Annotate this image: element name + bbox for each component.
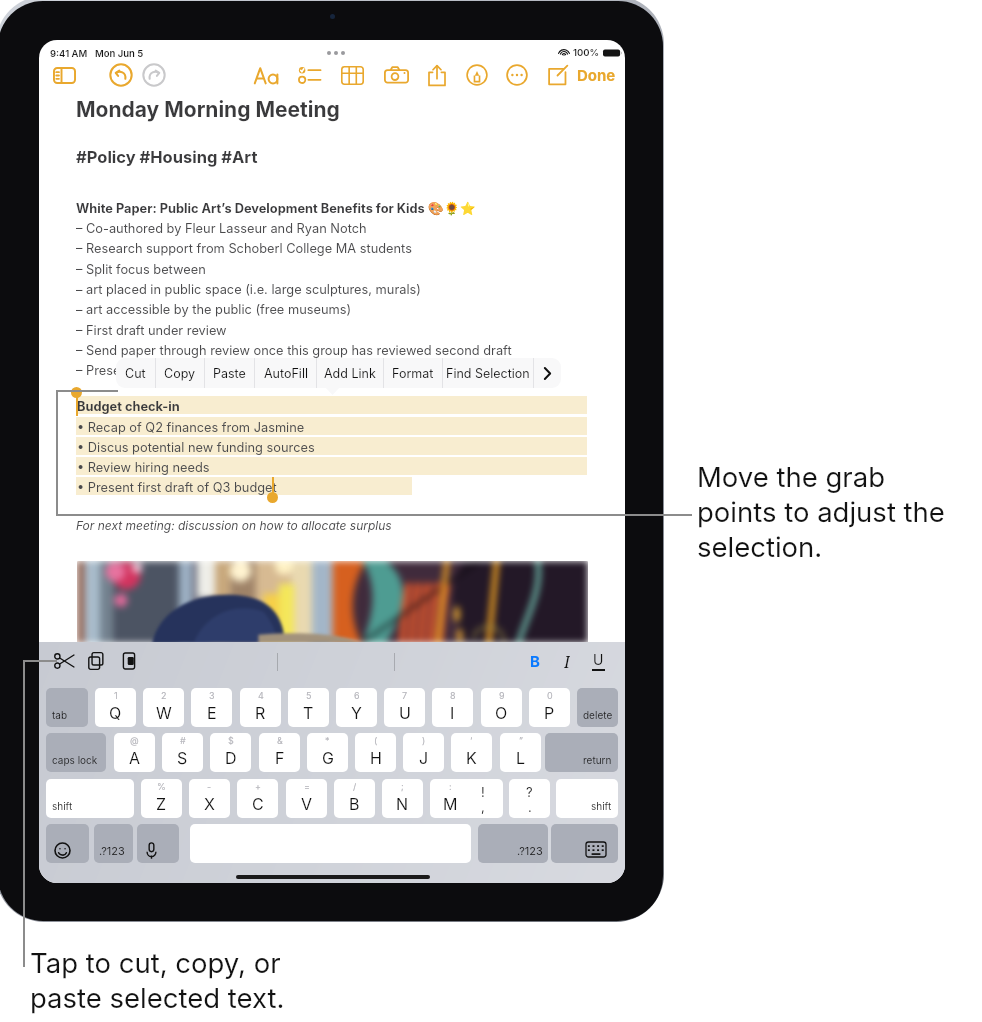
- button[interactable]: 2: [143, 688, 184, 727]
- button[interactable]: -: [189, 779, 230, 818]
- button[interactable]: Format: [384, 358, 442, 388]
- button[interactable]: 0: [529, 688, 570, 727]
- button[interactable]: (: [355, 733, 396, 772]
- button[interactable]: :: [430, 779, 471, 818]
- button[interactable]: shift: [556, 779, 618, 818]
- staticText: U: [399, 703, 411, 722]
- staticText: delete: [583, 709, 612, 721]
- button[interactable]: Format text: [254, 65, 280, 85]
- button[interactable]: tab: [46, 688, 88, 727]
- staticText: – Split focus between: [76, 262, 206, 277]
- button[interactable]: ”: [500, 733, 541, 772]
- button[interactable]: mic: [137, 824, 179, 863]
- button[interactable]: I: [559, 651, 575, 671]
- button[interactable]: kbd: [551, 824, 618, 863]
- button[interactable]: emoji: [46, 824, 89, 863]
- button[interactable]: U: [590, 651, 606, 673]
- button[interactable]: *: [307, 733, 348, 772]
- button[interactable]: ?: [509, 779, 550, 818]
- staticText: 2: [161, 690, 167, 701]
- button[interactable]: More actions: [534, 358, 561, 388]
- staticText: 3: [209, 690, 215, 701]
- staticText: @: [130, 735, 139, 746]
- button[interactable]: 1: [95, 688, 136, 727]
- button[interactable]: shift: [46, 779, 134, 818]
- staticText: 1: [114, 690, 118, 701]
- staticText: Copy: [164, 366, 196, 381]
- button[interactable]: ;: [382, 779, 423, 818]
- button[interactable]: New note: [547, 65, 568, 86]
- staticText: Tap to cut, copy, or paste selected text…: [30, 946, 285, 1014]
- button[interactable]: .?123: [94, 824, 133, 863]
- button[interactable]: !: [462, 779, 503, 818]
- button[interactable]: #: [162, 733, 203, 772]
- button[interactable]: caps lock: [46, 733, 106, 772]
- button[interactable]: Find Selection: [443, 358, 533, 388]
- button[interactable]: delete: [577, 688, 618, 727]
- button[interactable]: Camera: [384, 65, 409, 85]
- button[interactable]: Paste: [205, 358, 254, 388]
- staticText: -: [207, 781, 212, 792]
- button[interactable]: Undo: [109, 63, 133, 87]
- staticText: ‘: [470, 735, 473, 746]
- button[interactable]: 7: [384, 688, 425, 727]
- button[interactable]: 6: [336, 688, 377, 727]
- button[interactable]: Markup: [466, 64, 488, 86]
- button[interactable]: /: [334, 779, 375, 818]
- staticText: – Send paper through review once this gr…: [76, 343, 512, 358]
- staticText: U: [593, 651, 604, 668]
- staticText: • Present first draft of Q3 budget: [77, 480, 277, 495]
- button[interactable]: +: [237, 779, 278, 818]
- button[interactable]: 9: [481, 688, 522, 727]
- staticText: J: [419, 748, 429, 767]
- button[interactable]: 4: [240, 688, 281, 727]
- button[interactable]: Redo: [142, 63, 166, 87]
- staticText: Format: [392, 366, 434, 381]
- staticText: $: [228, 735, 234, 746]
- button[interactable]: 5: [288, 688, 329, 727]
- button[interactable]: B: [527, 651, 543, 671]
- button[interactable]: Checklist: [298, 65, 321, 85]
- button[interactable]: More: [506, 64, 528, 86]
- button[interactable]: Selection start handle: [71, 387, 82, 398]
- staticText: – Present first draft of Q3 budget: [76, 363, 275, 378]
- button[interactable]: Done: [577, 66, 616, 84]
- button[interactable]: Paste: [121, 651, 137, 671]
- staticText: *: [325, 735, 330, 746]
- button[interactable]: .?123: [478, 824, 548, 863]
- staticText: – art accessible by the public (free mus…: [76, 302, 352, 317]
- button[interactable]: ‘: [451, 733, 492, 772]
- button[interactable]: Add Link: [317, 358, 383, 388]
- staticText: B: [349, 794, 360, 813]
- staticText: Move the grab points to adjust the selec…: [697, 460, 945, 563]
- button[interactable]: AutoFill: [255, 358, 316, 388]
- staticText: H: [370, 748, 382, 767]
- staticText: =: [304, 781, 310, 792]
- staticText: 6: [354, 690, 360, 701]
- button[interactable]: 8: [432, 688, 473, 727]
- button[interactable]: @: [114, 733, 155, 772]
- staticText: caps lock: [52, 754, 98, 766]
- button[interactable]: 3: [191, 688, 232, 727]
- staticText: 8: [450, 690, 456, 701]
- button[interactable]: &: [259, 733, 300, 772]
- button[interactable]: Cut: [54, 651, 75, 671]
- button[interactable]: ): [403, 733, 444, 772]
- button[interactable]: %: [141, 779, 182, 818]
- staticText: return: [583, 754, 612, 766]
- button[interactable]: =: [286, 779, 327, 818]
- staticText: 5: [306, 690, 312, 701]
- button[interactable]: Table: [341, 66, 364, 85]
- staticText: D: [225, 748, 237, 767]
- button[interactable]: Selection end handle: [267, 492, 278, 503]
- button[interactable]: Sidebar: [53, 66, 76, 85]
- staticText: White Paper: Public Art’s Development Be…: [76, 201, 476, 217]
- button[interactable]: Copy: [156, 358, 204, 388]
- button[interactable]: Cut: [116, 358, 155, 388]
- staticText: Done: [577, 66, 616, 84]
- button[interactable]: Copy: [87, 651, 105, 671]
- button[interactable]: return: [545, 733, 618, 772]
- button[interactable]: Share: [427, 64, 447, 87]
- button[interactable]: $: [210, 733, 251, 772]
